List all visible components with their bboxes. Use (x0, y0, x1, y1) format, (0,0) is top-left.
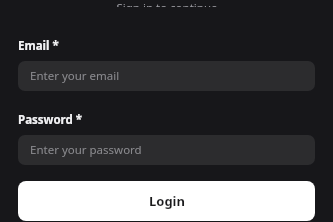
button[interactable]: Login (18, 181, 315, 221)
staticText: Email * (18, 38, 59, 54)
button[interactable]: Password input field (18, 135, 315, 165)
staticText: Password * (18, 112, 83, 128)
staticText: Sign in to continue (116, 0, 218, 7)
button[interactable]: Email input field (18, 61, 315, 91)
staticText: Enter your email (30, 68, 120, 84)
staticText: Login (149, 192, 185, 210)
staticText: Enter your password (30, 142, 142, 158)
